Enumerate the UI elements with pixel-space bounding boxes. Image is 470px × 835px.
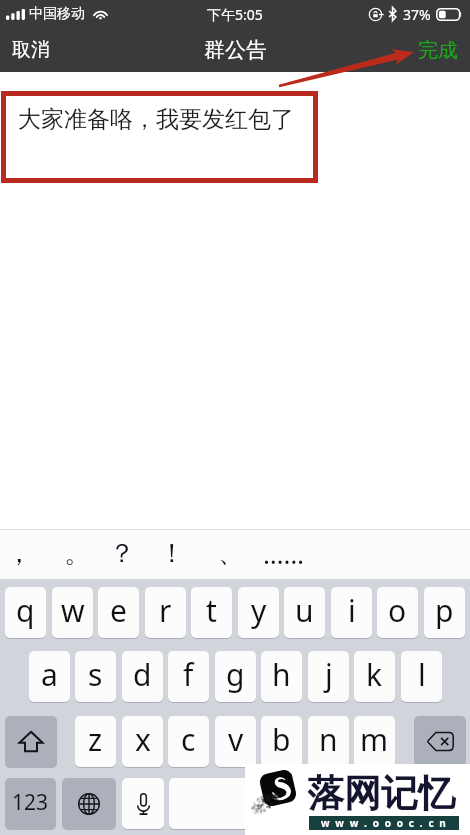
button[interactable]: ？	[96, 529, 147, 579]
button[interactable]: v	[215, 716, 256, 767]
button[interactable]: Backspace	[414, 716, 466, 767]
button[interactable]: 。	[51, 529, 102, 579]
button[interactable]: d	[122, 651, 163, 702]
staticText: x	[135, 719, 151, 760]
button[interactable]: 空格	[169, 778, 364, 829]
staticText: m	[360, 719, 389, 760]
staticText: f	[183, 654, 194, 695]
button[interactable]: b	[261, 716, 302, 767]
button[interactable]: Voice input	[122, 778, 164, 829]
staticText: u	[295, 590, 314, 631]
staticText: ……	[263, 536, 305, 571]
button[interactable]: w	[52, 587, 93, 638]
staticText: i	[348, 590, 356, 631]
button[interactable]: i	[331, 587, 372, 638]
button[interactable]: a	[29, 651, 70, 702]
staticText: e	[110, 590, 127, 631]
button[interactable]: e	[98, 587, 139, 638]
button[interactable]: 完成	[406, 28, 470, 72]
staticText: n	[319, 719, 338, 760]
staticText: p	[435, 590, 454, 631]
staticText: 换行	[397, 790, 439, 816]
staticText: 。	[64, 537, 90, 570]
button[interactable]: u	[284, 587, 325, 638]
button[interactable]: g	[215, 651, 256, 702]
staticText: 大家准备咯，我要发红包了	[18, 105, 294, 134]
staticText: v	[228, 719, 244, 760]
staticText: 落网记忆	[307, 770, 455, 817]
button[interactable]: ，	[0, 529, 44, 579]
staticText: d	[133, 654, 152, 695]
staticText: c	[181, 719, 196, 760]
staticText: l	[418, 654, 426, 695]
staticText: a	[41, 654, 58, 695]
button[interactable]: k	[354, 651, 395, 702]
button[interactable]: s	[75, 651, 116, 702]
button[interactable]: r	[145, 587, 186, 638]
staticText: w w w . o o o c . c n	[321, 816, 448, 830]
staticText: g	[226, 654, 245, 695]
staticText: 空格	[246, 790, 288, 816]
staticText: ？	[109, 537, 135, 570]
button[interactable]: h	[261, 651, 302, 702]
button[interactable]: 123	[5, 778, 56, 829]
staticText: 下午5:05	[207, 5, 263, 24]
staticText: 123	[12, 788, 49, 817]
button[interactable]: 换行	[370, 778, 466, 829]
button[interactable]: l	[401, 651, 442, 702]
staticText: 、	[218, 537, 244, 570]
staticText: ！	[159, 537, 185, 570]
staticText: s	[88, 654, 103, 695]
staticText: j	[325, 654, 333, 695]
staticText: w	[61, 590, 85, 631]
button[interactable]: c	[168, 716, 209, 767]
button[interactable]: 取消	[0, 28, 62, 72]
button[interactable]: z	[75, 716, 116, 767]
staticText: y	[251, 590, 267, 631]
staticText: h	[272, 654, 291, 695]
button[interactable]: o	[377, 587, 418, 638]
button[interactable]: x	[122, 716, 163, 767]
staticText: 完成	[418, 38, 458, 63]
staticText: r	[159, 590, 172, 631]
button[interactable]: y	[238, 587, 279, 638]
staticText: ，	[6, 537, 32, 570]
button[interactable]: t	[191, 587, 232, 638]
button[interactable]: q	[5, 587, 46, 638]
button[interactable]: f	[168, 651, 209, 702]
staticText: k	[366, 654, 383, 695]
button[interactable]: m	[354, 716, 395, 767]
button[interactable]: 、	[205, 529, 256, 579]
staticText: o	[388, 590, 407, 631]
staticText: 取消	[12, 38, 50, 62]
staticText: z	[88, 719, 103, 760]
staticText: 群公告	[204, 37, 267, 63]
staticText: 中国移动	[29, 5, 85, 23]
button[interactable]: Switch keyboard	[62, 778, 116, 829]
staticText: 37%	[403, 5, 431, 24]
button[interactable]: p	[424, 587, 465, 638]
button[interactable]: ……	[258, 529, 309, 579]
button[interactable]: n	[308, 716, 349, 767]
staticText: b	[272, 719, 291, 760]
button[interactable]: j	[308, 651, 349, 702]
staticText: q	[16, 590, 35, 631]
button[interactable]: Shift	[5, 716, 57, 767]
staticText: t	[206, 590, 217, 631]
button[interactable]: ！	[146, 529, 197, 579]
